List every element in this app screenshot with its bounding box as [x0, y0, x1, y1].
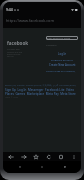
- staticText: English (UK) Español Français (France) 中…: [5, 84, 79, 87]
- button[interactable]: Email address or phone number: [46, 36, 78, 40]
- button[interactable]: https://www.facebook.com: [6, 18, 54, 23]
- button[interactable]: Log In: [46, 52, 78, 56]
- button[interactable]: Back: [14, 161, 26, 173]
- button[interactable]: Home: [36, 161, 48, 173]
- button[interactable]: Reload: [43, 152, 54, 161]
- staticText: Create New Account: [49, 63, 76, 67]
- staticText: Log In: [58, 52, 67, 56]
- staticText: facebook: [7, 40, 29, 46]
- button[interactable]: Create New Account: [46, 63, 78, 67]
- button[interactable]: Back: [5, 152, 16, 161]
- staticText: Create a Page for a celebrity, brand or …: [46, 70, 78, 73]
- staticText: Password: [46, 44, 57, 47]
- staticText: Connect with friends and the world aroun…: [7, 48, 24, 57]
- button[interactable]: Tabs: [55, 152, 66, 161]
- button[interactable]: Forgotten account?: [46, 58, 78, 61]
- button[interactable]: Recent apps: [59, 161, 71, 173]
- staticText: 9:44: [6, 7, 13, 12]
- staticText: Meta © 2024: [5, 96, 19, 99]
- button[interactable]: Create a Page for a celebrity, brand or …: [46, 70, 78, 73]
- staticText: https://www.facebook.com: [6, 18, 54, 23]
- staticText: Forgotten account?: [51, 58, 73, 61]
- staticText: Email address or phone number: [47, 37, 78, 40]
- staticText: Sign Up Log In Messenger Facebook Lite V…: [5, 88, 79, 95]
- button[interactable]: Forward: [18, 152, 29, 161]
- button[interactable]: More options: [68, 152, 79, 161]
- button[interactable]: Bookmark: [30, 152, 41, 161]
